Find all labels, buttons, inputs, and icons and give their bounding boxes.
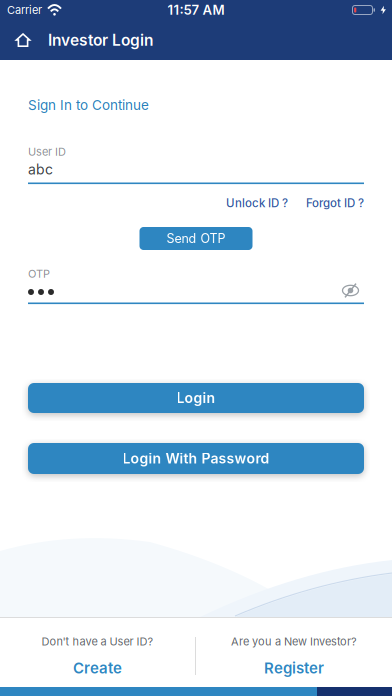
- staticText: Sign In to Continue: [28, 97, 149, 113]
- staticText: Unlock ID ?: [226, 196, 288, 210]
- button[interactable]: Are you a New Investor?: [196, 635, 392, 677]
- button[interactable]: Login With Password: [28, 443, 364, 474]
- staticText: Investor Login: [48, 31, 153, 49]
- staticText: Register: [264, 659, 324, 677]
- button[interactable]: Login: [28, 383, 364, 413]
- staticText: Login With Password: [122, 450, 269, 467]
- staticText: 11:57 AM: [167, 2, 224, 18]
- button[interactable]: Don't have a User ID?: [0, 635, 195, 677]
- staticText: User ID: [28, 145, 66, 158]
- staticText: OTP: [28, 267, 50, 280]
- staticText: abc: [28, 161, 53, 178]
- staticText: Carrier: [7, 3, 42, 17]
- staticText: Are you a New Investor?: [231, 635, 357, 648]
- staticText: Send OTP: [166, 231, 225, 246]
- button[interactable]: Home: [12, 29, 34, 51]
- button[interactable]: Show OTP: [342, 282, 359, 299]
- button[interactable]: Send OTP: [139, 227, 252, 250]
- staticText: Forgot ID ?: [306, 196, 364, 210]
- button[interactable]: Unlock ID ?: [226, 196, 288, 210]
- staticText: Login: [176, 389, 215, 406]
- button[interactable]: Forgot ID ?: [306, 196, 364, 210]
- staticText: Don't have a User ID?: [41, 635, 153, 648]
- staticText: Create: [73, 659, 122, 677]
